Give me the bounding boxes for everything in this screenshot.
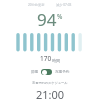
staticText: 20分前更新 xyxy=(28,3,45,7)
staticText: 充電予約 xyxy=(55,70,70,75)
staticText: 94 xyxy=(37,8,57,31)
button[interactable]: Switch charging mode xyxy=(41,69,52,75)
staticText: % xyxy=(57,12,63,21)
staticText: 21:00 xyxy=(36,87,65,100)
staticText: 時間 xyxy=(52,58,60,63)
staticText: 充電予約のスケジュール xyxy=(32,81,68,85)
staticText: 減少 07:03 xyxy=(56,3,72,7)
staticText: 節電 xyxy=(31,70,39,75)
staticText: 170 xyxy=(40,54,52,63)
